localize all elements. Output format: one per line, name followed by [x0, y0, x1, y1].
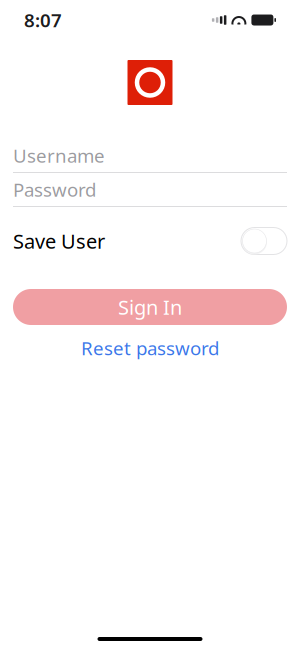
staticText: 8:07 [24, 8, 62, 32]
button[interactable]: Save User [0, 221, 300, 261]
button[interactable]: Reset password [71, 335, 229, 361]
staticText: Save User [13, 228, 105, 254]
staticText: Reset password [81, 336, 219, 360]
staticText: Username [13, 143, 105, 168]
button[interactable]: Sign In [13, 289, 287, 325]
staticText: Password [13, 177, 96, 202]
staticText: Sign In [118, 294, 182, 320]
